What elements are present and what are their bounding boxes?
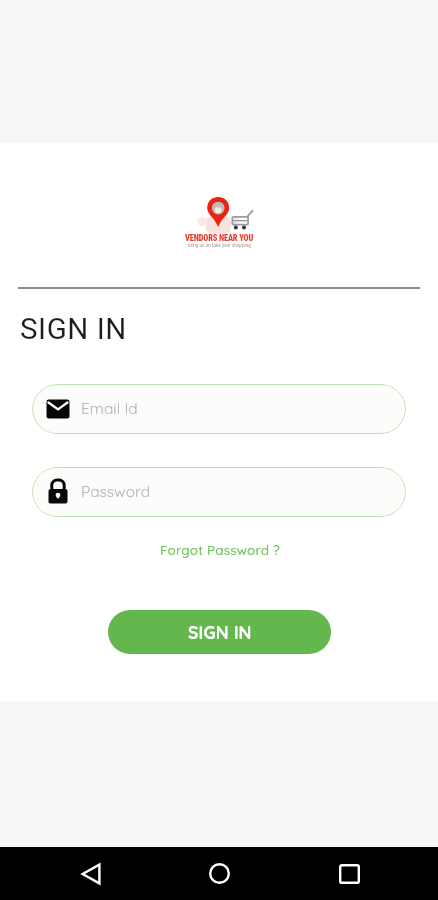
- staticText: Email Id: [81, 398, 138, 417]
- staticText: SIGN IN: [20, 312, 127, 347]
- staticText: SIGN IN: [188, 621, 252, 643]
- button[interactable]: Forgot Password ?: [130, 538, 310, 560]
- staticText: bring us on take your shopping: [188, 242, 251, 248]
- button[interactable]: SIGN IN: [108, 610, 331, 654]
- button[interactable]: Email Id: [32, 384, 406, 434]
- staticText: Forgot Password ?: [160, 541, 280, 558]
- button[interactable]: Recent apps: [316, 847, 383, 900]
- button[interactable]: Home: [186, 847, 253, 900]
- staticText: Password: [81, 481, 151, 500]
- button[interactable]: Back: [57, 847, 124, 900]
- staticText: VENDORS NEAR YOU: [185, 233, 254, 243]
- button[interactable]: Password: [32, 467, 406, 517]
